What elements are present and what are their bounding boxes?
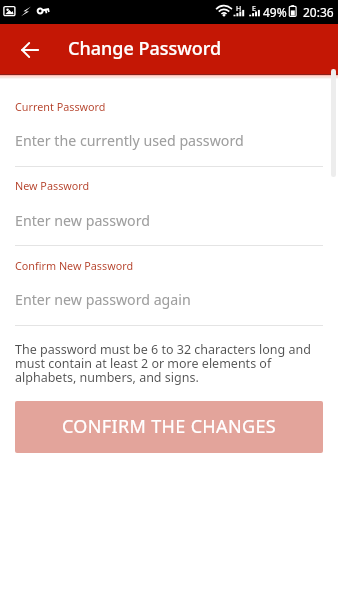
staticText: CONFIRM THE CHANGES — [62, 414, 276, 439]
staticText: H — [236, 4, 242, 14]
button[interactable]: Back — [0, 24, 52, 74]
staticText: 49% — [263, 4, 287, 20]
staticText: Enter new password — [15, 211, 150, 230]
staticText: Current Password — [15, 99, 106, 114]
staticText: Change Password — [68, 36, 222, 61]
staticText: 20:36 — [303, 4, 334, 20]
staticText: The password must be 6 to 32 characters … — [15, 341, 323, 386]
button[interactable]: CONFIRM THE CHANGES — [15, 401, 323, 453]
staticText: Enter the currently used password — [15, 131, 244, 150]
staticText: New Password — [15, 178, 90, 193]
staticText: Enter new password again — [15, 290, 191, 309]
staticText: Confirm New Password — [15, 258, 134, 273]
staticText: E — [252, 4, 256, 14]
